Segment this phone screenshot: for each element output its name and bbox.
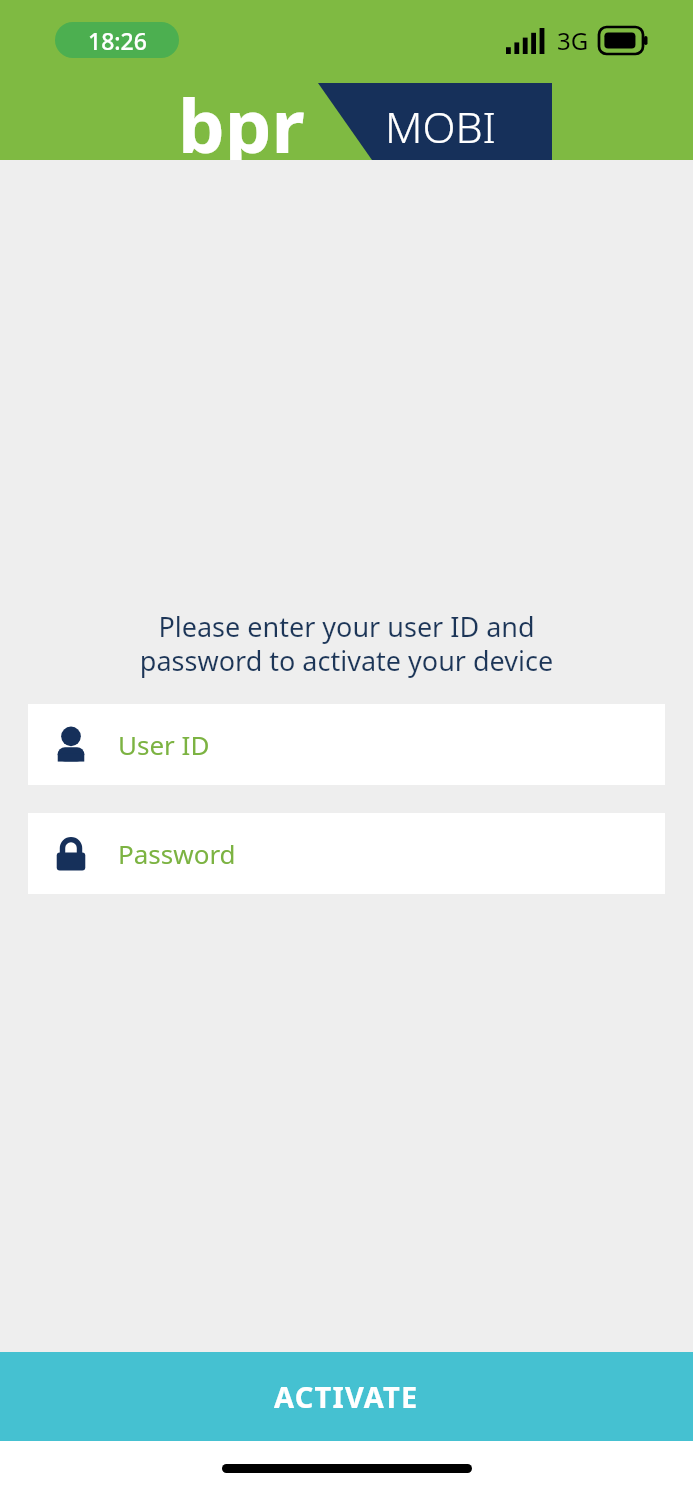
staticText: User ID <box>118 727 210 762</box>
staticText: MOBI <box>385 97 496 156</box>
staticText: ACTIVATE <box>274 1377 419 1416</box>
staticText: Password <box>118 836 236 871</box>
staticText: 3G <box>557 24 589 57</box>
other: User ID <box>54 727 88 763</box>
button[interactable]: ACTIVATE <box>0 1352 693 1441</box>
staticText: 18:26 <box>88 25 147 56</box>
staticText: Please enter your user ID and password t… <box>24 608 669 679</box>
other: Password <box>54 836 88 872</box>
staticText: bpr <box>178 74 305 175</box>
button[interactable]: Password <box>28 813 665 894</box>
button[interactable]: User ID <box>28 704 665 785</box>
